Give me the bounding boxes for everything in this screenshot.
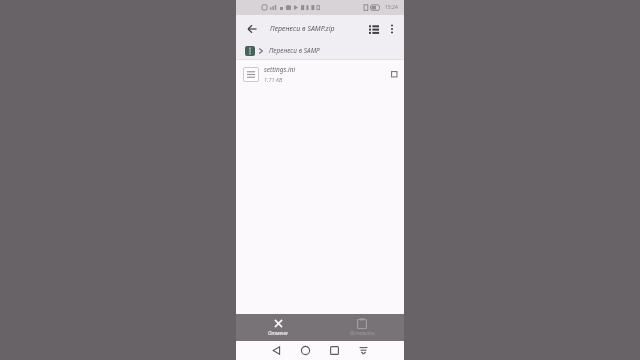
button[interactable] [385,65,403,83]
button[interactable] [320,341,349,360]
staticText: Перенеси в SAMP [269,46,320,55]
staticText: 15:24 [385,4,398,11]
button[interactable]: settings.ini [236,60,404,88]
button[interactable]: Вставить [320,314,404,341]
button[interactable] [291,341,320,360]
button[interactable] [384,15,400,42]
staticText: settings.ini [264,65,296,74]
button[interactable] [240,17,264,41]
button[interactable] [349,341,378,360]
button[interactable] [262,341,291,360]
staticText: Перенеси в SAMP.zip [270,24,335,34]
staticText: Отмена [268,330,288,337]
button[interactable]: Отмена [236,314,320,341]
staticText: Вставить [350,330,375,337]
button[interactable] [364,19,384,39]
button[interactable]: Перенеси в SAMP [236,42,404,59]
staticText: 1.71 KB [264,76,283,83]
